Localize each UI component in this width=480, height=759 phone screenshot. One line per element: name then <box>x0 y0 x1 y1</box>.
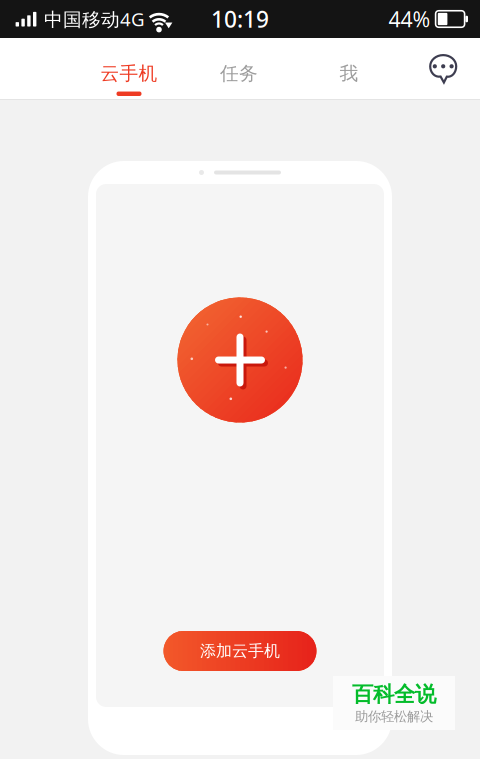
staticText: 中国移动4G <box>44 7 145 31</box>
button[interactable]: 任务 <box>184 38 294 99</box>
button[interactable]: 云手机 <box>74 38 184 99</box>
staticText: 助你轻松解决 <box>355 708 433 725</box>
staticText: 添加云手机 <box>200 641 280 661</box>
staticText: 任务 <box>220 62 258 85</box>
staticText: 云手机 <box>100 62 157 85</box>
staticText: 我 <box>339 62 358 85</box>
button[interactable]: 消息 <box>414 38 474 99</box>
button[interactable]: 我 <box>294 38 404 99</box>
staticText: 44% <box>389 5 431 33</box>
staticText: 百科全说 <box>352 681 436 707</box>
staticText: 10:19 <box>211 4 269 34</box>
button[interactable]: 添加云手机 <box>163 631 316 671</box>
